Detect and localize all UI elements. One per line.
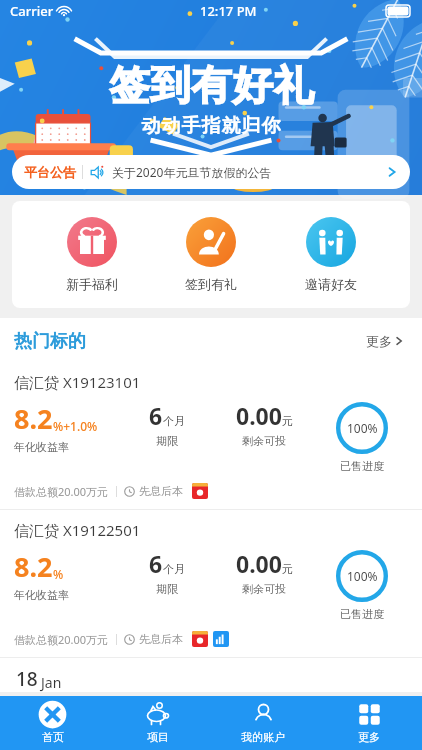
staticText: 已售进度	[340, 607, 384, 621]
staticText: 0.00	[236, 400, 282, 431]
staticText: 项目	[147, 730, 169, 744]
button[interactable]: 更多	[362, 329, 408, 353]
button[interactable]: 邀请好友	[291, 217, 371, 292]
staticText: 新手福利	[66, 276, 118, 292]
staticText: 100%	[347, 420, 378, 436]
staticText: 剩余可投	[242, 582, 286, 596]
staticText: 元	[282, 562, 293, 576]
staticText: 先息后本	[139, 484, 183, 498]
staticText: %+1.0%	[53, 418, 98, 434]
staticText: 动动手指就归你	[141, 114, 281, 138]
staticText: 信汇贷 X19123101	[14, 372, 141, 392]
staticText: 首页	[42, 730, 64, 744]
staticText: 信汇贷 X19122501	[14, 520, 141, 540]
staticText: 个月	[163, 562, 185, 576]
button[interactable]: 首页	[0, 696, 105, 750]
staticText: 更多	[366, 333, 392, 349]
button[interactable]: 签到有礼	[171, 217, 251, 292]
staticText: 8.2	[14, 548, 53, 585]
staticText: 6	[149, 548, 163, 579]
staticText: 签到有好礼	[109, 60, 314, 110]
staticText: Jan	[41, 673, 62, 692]
button[interactable]: 信汇贷 X19123101	[0, 362, 422, 509]
staticText: 年化收益率	[14, 440, 69, 454]
button[interactable]: 新手福利	[52, 217, 132, 292]
staticText: 平台公告	[24, 164, 76, 180]
button[interactable]: 我的账户	[210, 696, 316, 750]
staticText: 更多	[358, 730, 380, 744]
staticText: 已售进度	[340, 459, 384, 473]
staticText: 12:17 PM	[200, 2, 257, 20]
staticText: 期限	[156, 582, 178, 596]
staticText: 先息后本	[139, 632, 183, 646]
staticText: 元	[282, 414, 293, 428]
staticText: Carrier	[10, 2, 54, 20]
staticText: 8.2	[14, 400, 53, 437]
staticText: %	[53, 566, 64, 582]
staticText: 年化收益率	[14, 588, 69, 602]
button[interactable]: 平台公告	[12, 155, 410, 189]
staticText: 邀请好友	[305, 276, 357, 292]
staticText: 100%	[347, 568, 378, 584]
staticText: 签到有礼	[185, 276, 237, 292]
staticText: 0.00	[236, 548, 282, 579]
staticText: 借款总额20.00万元	[14, 484, 109, 499]
staticText: 关于2020年元旦节放假的公告	[112, 164, 272, 180]
staticText: 热门标的	[14, 330, 86, 353]
button[interactable]: 信汇贷 X19122501	[0, 510, 422, 657]
staticText: 借款总额20.00万元	[14, 632, 109, 647]
staticText: 6	[149, 400, 163, 431]
staticText: 我的账户	[241, 730, 285, 744]
staticText: 个月	[163, 414, 185, 428]
staticText: 剩余可投	[242, 434, 286, 448]
staticText: 期限	[156, 434, 178, 448]
staticText: 18	[16, 666, 38, 692]
button[interactable]: 更多	[316, 696, 422, 750]
button[interactable]: 项目	[105, 696, 210, 750]
